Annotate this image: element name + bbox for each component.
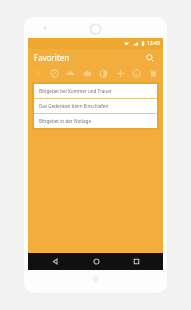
button[interactable]: Wolke <box>63 66 78 80</box>
button[interactable]: Hinzufuegen <box>113 66 128 80</box>
button[interactable]: Übersicht <box>122 253 150 270</box>
button[interactable]: Bittgebet in der Notlage <box>34 114 157 128</box>
button[interactable]: Papierkorb <box>146 66 161 80</box>
button[interactable]: Tasche <box>80 66 95 80</box>
button[interactable]: Startbildschirm <box>82 253 110 270</box>
staticText: Favoriten <box>34 52 70 63</box>
staticText: Bittgebet bei Kummer und Trauer <box>39 88 112 94</box>
button[interactable]: Das Gedenken beim Einschlafen <box>34 99 157 113</box>
staticText: Das Gedenken beim Einschlafen <box>39 103 109 109</box>
button[interactable]: Stimmung <box>129 66 144 80</box>
button[interactable]: Bittgebet bei Kummer und Trauer <box>34 84 157 98</box>
button[interactable]: Zurück <box>41 253 69 270</box>
button[interactable]: Suchen <box>143 51 157 65</box>
button[interactable]: Gebete <box>47 66 62 80</box>
staticText: 13:45 <box>147 40 160 47</box>
staticText: Bittgebet in der Notlage <box>39 118 92 124</box>
button[interactable]: Schutz <box>96 66 111 80</box>
